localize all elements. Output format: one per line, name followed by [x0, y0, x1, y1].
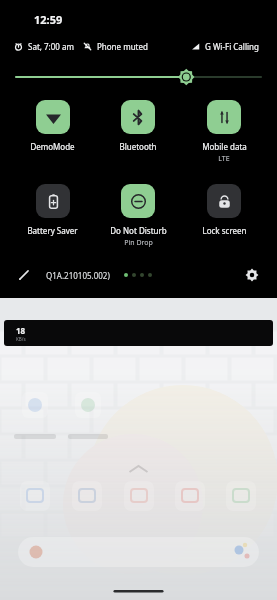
button[interactable]: Settings — [241, 264, 263, 286]
staticText: DemoMode — [30, 141, 75, 152]
staticText: Phone muted — [97, 41, 148, 52]
staticText: KB/s — [16, 336, 26, 342]
button[interactable]: Do Not Disturb — [95, 184, 181, 248]
button[interactable]: 18 — [4, 320, 273, 346]
staticText: Lock screen — [202, 225, 247, 236]
staticText: Do Not Disturb — [110, 225, 167, 236]
staticText: Battery Saver — [27, 225, 78, 236]
button[interactable]: Mobile data — [181, 100, 267, 164]
staticText: 18 — [16, 325, 26, 336]
staticText: Bluetooth — [119, 141, 157, 152]
staticText: Sat, 7:00 am — [28, 41, 74, 52]
staticText: 12:59 — [34, 12, 63, 27]
button[interactable]: DemoMode — [10, 100, 95, 152]
staticText: Q1A.210105.002) — [46, 270, 110, 281]
button[interactable]: Edit tiles — [14, 265, 34, 285]
button[interactable]: Brightness — [16, 68, 261, 86]
staticText: G Wi-Fi Calling — [205, 41, 259, 52]
staticText: LTE — [218, 154, 230, 164]
button[interactable]: Bluetooth — [95, 100, 181, 152]
button[interactable]: Battery Saver — [10, 184, 95, 236]
staticText: Mobile data — [202, 141, 247, 152]
button[interactable]: Lock screen — [181, 184, 267, 236]
staticText: Pin Drop — [124, 238, 153, 248]
